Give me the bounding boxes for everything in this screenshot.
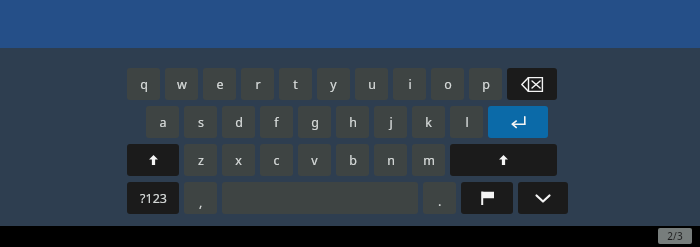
- button[interactable]: f: [260, 106, 293, 138]
- button[interactable]: l: [450, 106, 483, 138]
- button[interactable]: v: [298, 144, 331, 176]
- staticText: i: [408, 76, 412, 93]
- button[interactable]: p: [469, 68, 502, 100]
- button[interactable]: .: [423, 182, 456, 214]
- button[interactable]: a: [146, 106, 179, 138]
- button[interactable]: Shift: [450, 144, 557, 176]
- button[interactable]: b: [336, 144, 369, 176]
- button[interactable]: ?123: [127, 182, 179, 214]
- staticText: .: [438, 193, 442, 210]
- button[interactable]: w: [165, 68, 198, 100]
- staticText: ,: [199, 194, 203, 211]
- staticText: r: [255, 76, 261, 93]
- button[interactable]: Hide keyboard: [518, 182, 568, 214]
- staticText: g: [311, 114, 319, 131]
- button[interactable]: r: [241, 68, 274, 100]
- staticText: z: [198, 152, 204, 169]
- staticText: d: [235, 114, 243, 131]
- button[interactable]: i: [393, 68, 426, 100]
- button[interactable]: Change language: [461, 182, 513, 214]
- button[interactable]: h: [336, 106, 369, 138]
- button[interactable]: 2/3: [658, 228, 692, 244]
- staticText: f: [274, 114, 279, 131]
- button[interactable]: o: [431, 68, 464, 100]
- staticText: s: [198, 114, 204, 131]
- staticText: o: [444, 76, 452, 93]
- staticText: p: [482, 76, 490, 93]
- button[interactable]: g: [298, 106, 331, 138]
- button[interactable]: e: [203, 68, 236, 100]
- staticText: e: [216, 76, 224, 93]
- staticText: j: [389, 114, 393, 131]
- staticText: c: [273, 152, 280, 169]
- button[interactable]: Enter: [488, 106, 548, 138]
- button[interactable]: m: [412, 144, 445, 176]
- button[interactable]: z: [184, 144, 217, 176]
- staticText: k: [425, 114, 432, 131]
- staticText: ?123: [140, 190, 167, 207]
- staticText: m: [423, 152, 435, 169]
- staticText: 2/3: [667, 229, 683, 243]
- button[interactable]: Shift: [127, 144, 179, 176]
- staticText: q: [140, 76, 148, 93]
- staticText: n: [387, 152, 395, 169]
- button[interactable]: s: [184, 106, 217, 138]
- button[interactable]: ,: [184, 182, 217, 214]
- button[interactable]: n: [374, 144, 407, 176]
- staticText: y: [330, 76, 337, 93]
- staticText: a: [159, 114, 167, 131]
- staticText: v: [311, 152, 318, 169]
- staticText: w: [177, 76, 187, 93]
- button[interactable]: d: [222, 106, 255, 138]
- staticText: l: [465, 114, 469, 131]
- staticText: b: [349, 152, 357, 169]
- button[interactable]: c: [260, 144, 293, 176]
- button[interactable]: q: [127, 68, 160, 100]
- button[interactable]: u: [355, 68, 388, 100]
- button[interactable]: y: [317, 68, 350, 100]
- staticText: t: [293, 76, 298, 93]
- staticText: u: [368, 76, 376, 93]
- button[interactable]: k: [412, 106, 445, 138]
- button[interactable]: Backspace: [507, 68, 557, 100]
- button[interactable]: x: [222, 144, 255, 176]
- staticText: x: [235, 152, 242, 169]
- button[interactable]: t: [279, 68, 312, 100]
- staticText: h: [349, 114, 357, 131]
- button[interactable]: j: [374, 106, 407, 138]
